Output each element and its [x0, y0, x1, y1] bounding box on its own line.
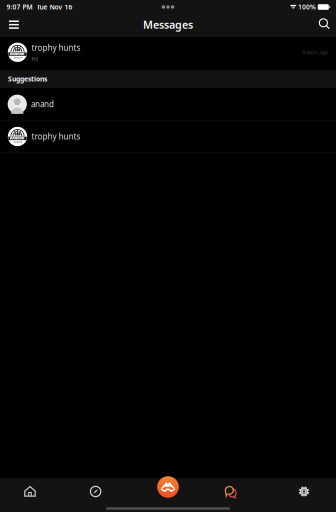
staticText: Hi!	[31, 55, 37, 62]
button[interactable]: Home	[0, 478, 63, 505]
button[interactable]: Create	[128, 478, 198, 505]
staticText: Messages	[143, 17, 193, 32]
staticText: 100%	[298, 3, 316, 11]
button[interactable]: Search	[302, 14, 336, 37]
button[interactable]: Settings	[264, 478, 336, 505]
button[interactable]: Messages	[198, 478, 264, 505]
button[interactable]: Menu	[0, 14, 34, 37]
staticText: Tue Nov 16	[36, 3, 72, 11]
button[interactable]: Create	[157, 476, 179, 498]
button[interactable]: trophy hunts	[0, 121, 336, 152]
button[interactable]: anand	[0, 88, 336, 120]
button[interactable]: Discover	[63, 478, 128, 505]
staticText: Suggestions	[8, 75, 47, 83]
staticText: 9:07 PM	[6, 3, 32, 11]
staticText: trophy hunts	[31, 42, 80, 53]
staticText: trophy hunts	[31, 131, 80, 142]
staticText: anand	[31, 99, 54, 109]
button[interactable]: trophy hunts	[0, 37, 336, 70]
staticText: 3 days ago	[302, 49, 328, 56]
